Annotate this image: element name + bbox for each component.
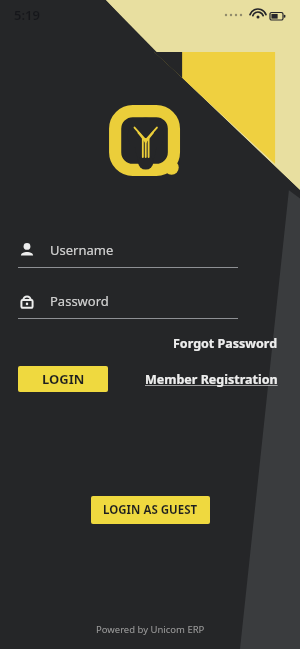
button[interactable]: LOGIN AS GUEST — [91, 496, 210, 524]
staticText: Member Registration — [145, 371, 278, 388]
staticText: Password — [50, 292, 109, 310]
button[interactable]: LOGIN — [18, 366, 108, 392]
staticText: LOGIN AS GUEST — [103, 502, 198, 518]
button[interactable]: Username — [18, 233, 238, 268]
staticText: Username — [50, 241, 114, 259]
button[interactable]: Forgot Password — [169, 331, 282, 356]
button[interactable]: Password — [18, 284, 238, 319]
staticText: Powered by Unicom ERP — [96, 623, 205, 636]
other: Username — [18, 241, 36, 259]
other: Password — [18, 292, 36, 310]
staticText: 5:19 — [14, 6, 40, 24]
staticText: LOGIN — [42, 370, 85, 388]
staticText: Forgot Password — [173, 335, 278, 352]
button[interactable]: Member Registration — [141, 367, 282, 392]
